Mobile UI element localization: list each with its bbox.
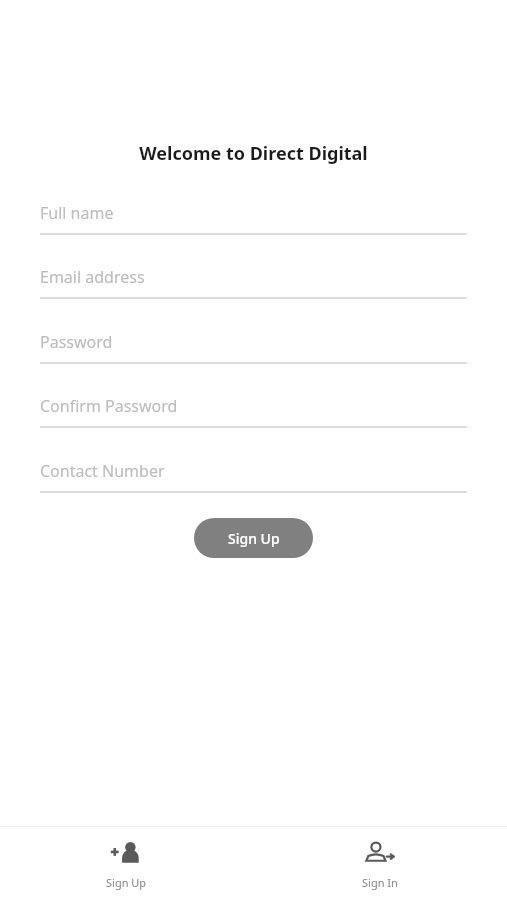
button[interactable]: Sign Up [0, 827, 253, 890]
staticText: Welcome to Direct Digital [0, 141, 507, 166]
button[interactable]: Full name [40, 200, 467, 235]
button[interactable]: Password [40, 329, 467, 364]
button[interactable]: Contact Number [40, 458, 467, 493]
staticText: Sign Up [106, 875, 147, 890]
staticText: Confirm Password [40, 395, 178, 417]
staticText: Email address [40, 266, 145, 288]
button[interactable]: Sign Up [194, 518, 313, 558]
staticText: Sign Up [228, 529, 280, 548]
staticText: Password [40, 331, 113, 353]
staticText: Sign In [362, 875, 398, 890]
staticText: Contact Number [40, 460, 165, 482]
staticText: Full name [40, 202, 114, 224]
button[interactable]: Email address [40, 264, 467, 299]
button[interactable]: Sign In [253, 827, 507, 890]
button[interactable]: Confirm Password [40, 393, 467, 428]
